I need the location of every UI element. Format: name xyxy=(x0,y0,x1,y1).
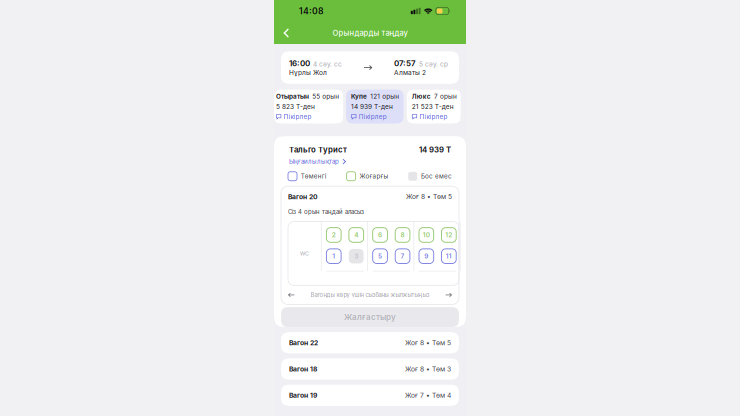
staticText: Нұрлы Жол xyxy=(289,69,327,77)
staticText: 7 xyxy=(401,252,405,260)
staticText: Жоғарғы xyxy=(359,172,388,180)
staticText: Жалғастыру xyxy=(344,312,396,322)
button[interactable]: 10 xyxy=(419,228,434,242)
staticText: 14 939 Т xyxy=(419,145,451,154)
button[interactable]: 2 xyxy=(326,228,341,242)
staticText: Вагон 22 xyxy=(289,339,318,347)
staticText: 12 xyxy=(445,231,452,239)
staticText: WC xyxy=(300,250,309,257)
staticText: 14:08 xyxy=(299,6,324,16)
button[interactable]: Люкс xyxy=(407,90,461,123)
staticText: 121 орын xyxy=(370,93,399,100)
staticText: 6 xyxy=(378,231,382,239)
staticText: 1 xyxy=(332,252,335,260)
staticText: Алматы 2 xyxy=(394,69,426,77)
staticText: 5 823 Т-ден xyxy=(276,103,315,110)
staticText: 4 xyxy=(354,231,358,239)
button[interactable]: Отыратын xyxy=(274,90,343,123)
staticText: Жоғ 7 • Төм 4 xyxy=(405,391,451,399)
staticText: Вагонды көру үшін сызбаны жылжытыңыз xyxy=(310,291,429,298)
staticText: 5 сәу. ср xyxy=(419,60,448,68)
staticText: Тальго Турист xyxy=(289,145,347,154)
staticText: Люкс xyxy=(412,93,431,100)
button[interactable]: 1 xyxy=(326,249,341,263)
button[interactable]: Вагон 22 xyxy=(281,332,459,353)
staticText: 11 xyxy=(446,252,452,260)
staticText: Төменгі xyxy=(301,172,327,180)
staticText: Отыратын xyxy=(276,93,309,100)
staticText: 21 523 Т-ден xyxy=(412,103,454,110)
button[interactable]: Вагон 18 xyxy=(281,358,459,380)
staticText: Жоғ 8 • Төм 5 xyxy=(406,193,452,201)
staticText: 07:57 xyxy=(394,59,416,68)
staticText: 4 сәу. сс xyxy=(313,60,342,68)
staticText: 8 xyxy=(401,231,405,239)
staticText: Сіз 4 орын таңдай аласыз xyxy=(288,208,364,215)
staticText: 3 xyxy=(354,252,358,260)
button[interactable]: 11 xyxy=(441,249,456,263)
button[interactable]: 5 xyxy=(373,249,387,263)
staticText: Жоғ 8 • Төм 3 xyxy=(405,365,451,373)
staticText: 2 xyxy=(332,231,336,239)
staticText: 9 xyxy=(424,252,428,260)
button[interactable]: Back xyxy=(274,23,297,43)
button[interactable]: 8 xyxy=(395,228,410,242)
button[interactable]: Купе xyxy=(346,90,404,123)
button[interactable]: Вагон 19 xyxy=(281,385,459,406)
button[interactable]: 7 xyxy=(395,249,410,263)
staticText: 14 939 Т-ден xyxy=(351,103,393,110)
staticText: Бос емес xyxy=(421,172,452,180)
staticText: 5 xyxy=(378,252,382,260)
button[interactable]: Ыңғайлылықтар xyxy=(274,154,466,165)
staticText: Жоғ 8 • Төм 5 xyxy=(405,339,451,347)
staticText: Пікірлер xyxy=(419,113,447,120)
staticText: Вагон 19 xyxy=(289,391,317,399)
staticText: Ыңғайлылықтар xyxy=(289,158,339,165)
button[interactable]: 12 xyxy=(441,228,456,242)
staticText: Пікірлер xyxy=(359,113,387,120)
staticText: 10 xyxy=(423,231,430,239)
button[interactable]: 4 xyxy=(349,228,364,242)
button[interactable]: Жалғастыру xyxy=(281,307,459,327)
staticText: 55 орын xyxy=(312,93,339,100)
staticText: Вагон 18 xyxy=(289,365,317,373)
staticText: 16:00 xyxy=(289,59,310,68)
button[interactable]: 6 xyxy=(373,228,387,242)
button[interactable]: 3 xyxy=(349,249,364,263)
staticText: Пікірлер xyxy=(284,113,312,120)
staticText: Орындарды таңдау xyxy=(332,28,407,38)
staticText: Купе xyxy=(351,93,367,100)
staticText: Вагон 20 xyxy=(288,193,318,201)
staticText: 7 орын xyxy=(434,93,457,100)
button[interactable]: 9 xyxy=(419,249,434,263)
